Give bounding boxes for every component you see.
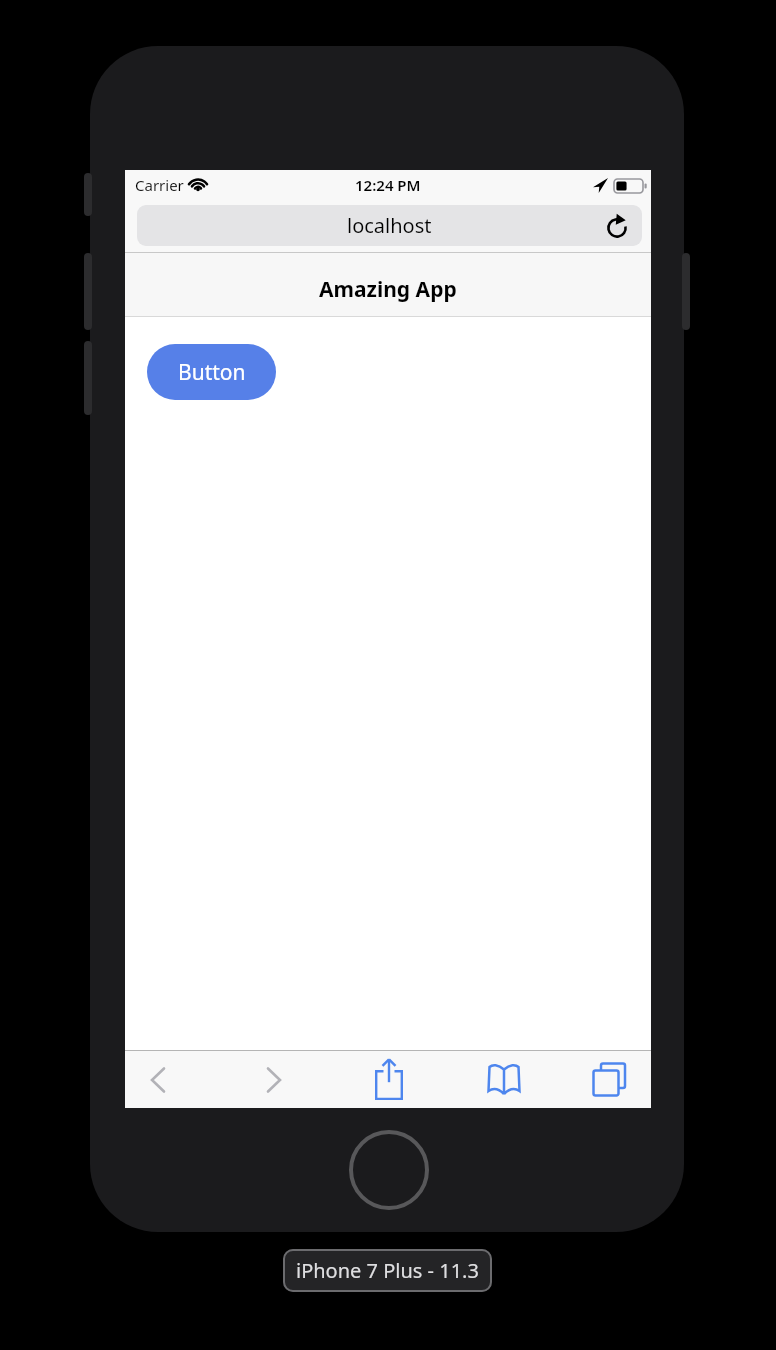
button[interactable] — [484, 1060, 524, 1100]
button[interactable] — [254, 1060, 294, 1100]
button[interactable]: localhost — [137, 205, 642, 246]
button[interactable] — [138, 1060, 178, 1100]
staticText: 12:24 PM — [355, 175, 421, 195]
staticText: Carrier — [135, 175, 184, 195]
staticText: Button — [178, 358, 246, 387]
staticText: Amazing App — [319, 275, 457, 304]
button[interactable] — [591, 1060, 631, 1100]
staticText: localhost — [347, 212, 432, 239]
button[interactable]: Button — [147, 344, 276, 400]
button[interactable] — [349, 1130, 429, 1210]
button[interactable] — [369, 1058, 409, 1102]
staticText: iPhone 7 Plus - 11.3 — [296, 1257, 479, 1284]
